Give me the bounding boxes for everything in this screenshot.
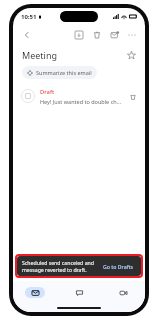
button[interactable]: Discard draft xyxy=(127,91,138,102)
staticText: Summarize this email xyxy=(36,69,92,76)
staticText: Hey! Just wanted to double check what… xyxy=(40,98,124,105)
button[interactable]: Summarize this email xyxy=(22,66,97,79)
staticText: Meeting xyxy=(22,49,57,61)
button[interactable]: Delete xyxy=(90,28,104,42)
staticText: message reverted to draft. xyxy=(22,266,87,273)
staticText: Draft xyxy=(40,88,55,96)
button[interactable]: More options xyxy=(125,28,139,42)
button[interactable]: Chat xyxy=(57,281,101,303)
button[interactable]: Go to Drafts xyxy=(101,261,136,272)
staticText: Scheduled send canceled and xyxy=(22,259,94,266)
button[interactable]: Mark unread xyxy=(108,28,122,42)
button[interactable]: Mail xyxy=(13,281,57,303)
button[interactable]: Back xyxy=(19,27,35,43)
staticText: Go to Drafts xyxy=(103,263,134,270)
staticText: 10:51 xyxy=(21,13,37,21)
button[interactable]: Meet xyxy=(101,281,145,303)
button[interactable]: Archive xyxy=(72,28,86,42)
button[interactable]: Draft xyxy=(13,83,145,109)
button[interactable]: Star xyxy=(124,48,138,62)
